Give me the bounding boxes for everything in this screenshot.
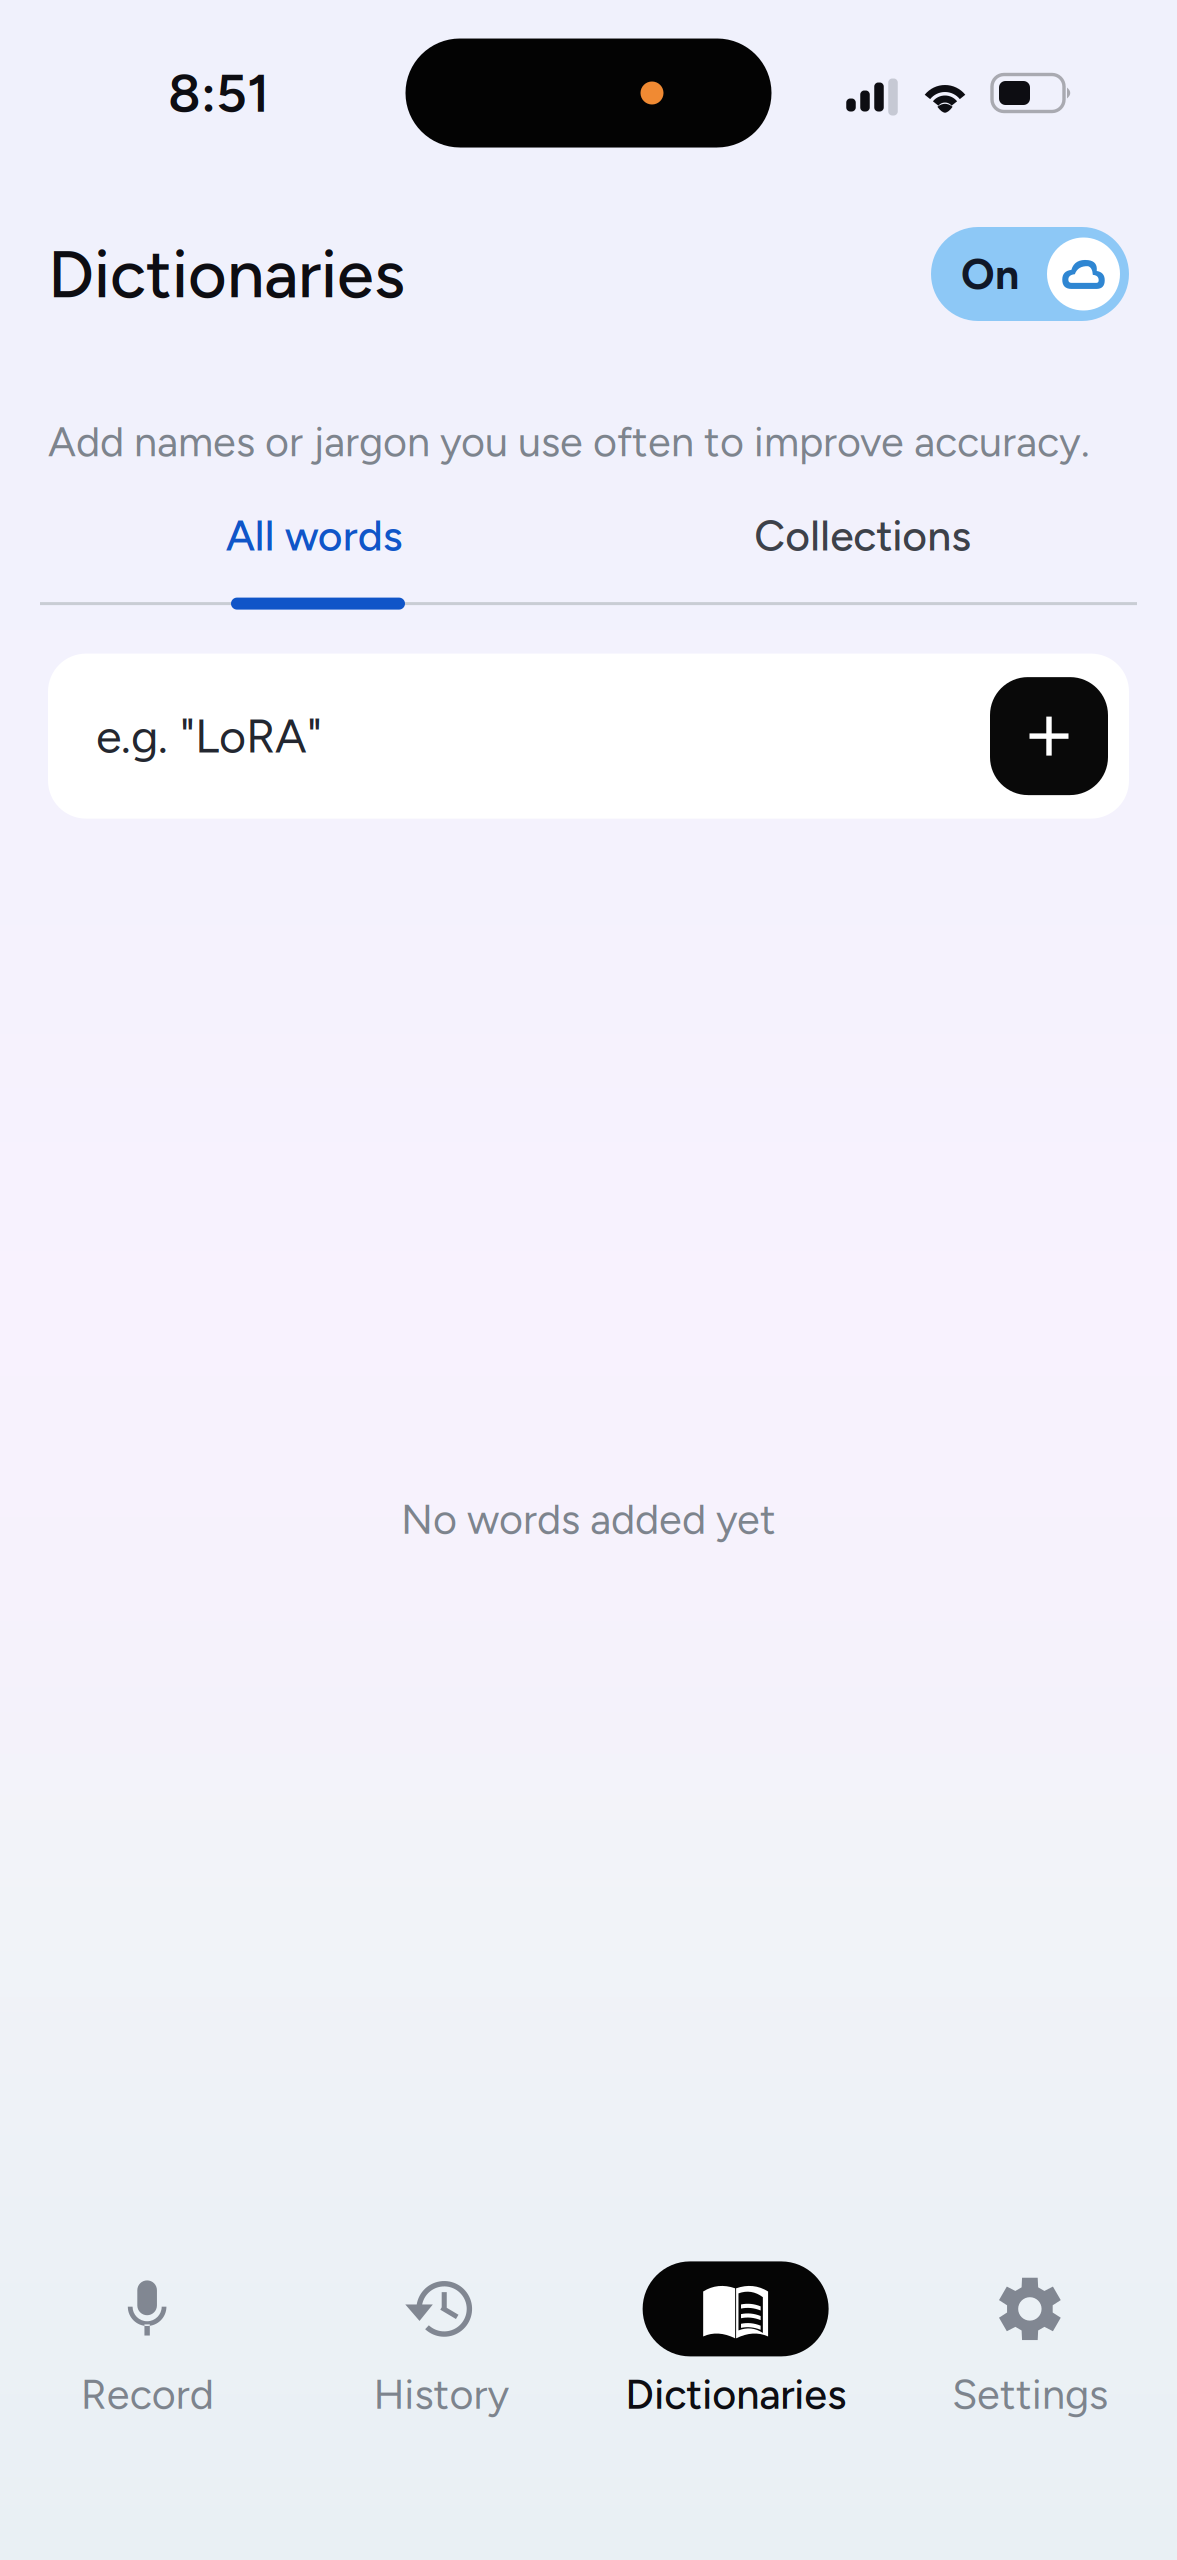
button[interactable]: All words [40, 510, 588, 562]
staticText: Dictionaries [625, 2369, 846, 2419]
button[interactable]: Cloud sync On [931, 227, 1129, 321]
staticText: 8:51 [168, 61, 269, 125]
staticText: No words added yet [401, 1495, 776, 1544]
staticText: Record [81, 2369, 214, 2419]
staticText: Add names or jargon you use often to imp… [48, 417, 1090, 467]
button[interactable]: History [294, 2261, 588, 2419]
staticText: Collections [754, 510, 971, 561]
button[interactable]: Settings [883, 2261, 1177, 2419]
staticText: On [961, 248, 1019, 300]
staticText: All words [226, 510, 403, 561]
staticText: e.g. "LoRA" [96, 708, 322, 764]
button[interactable]: Dictionaries [588, 2261, 883, 2419]
button[interactable]: Record [0, 2261, 294, 2419]
staticText: History [373, 2369, 509, 2419]
button[interactable]: Add word [990, 677, 1108, 795]
staticText: Settings [952, 2369, 1108, 2419]
staticText: Dictionaries [48, 234, 405, 314]
button[interactable]: Collections [588, 510, 1137, 562]
